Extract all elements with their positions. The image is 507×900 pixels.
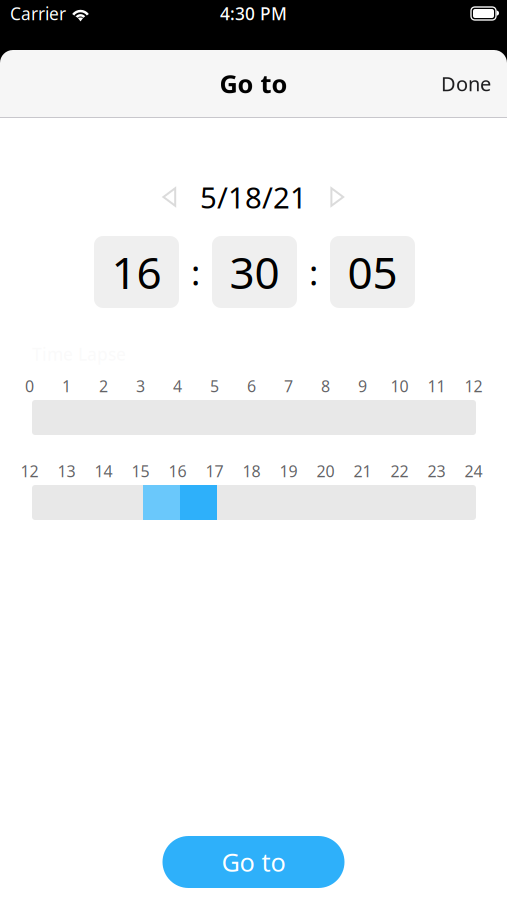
staticText: Go to <box>219 67 287 100</box>
staticText: 05 <box>347 243 397 301</box>
staticText: 21 <box>353 460 371 482</box>
staticText: 18 <box>242 460 260 482</box>
staticText: 5 <box>210 375 219 397</box>
button[interactable]: Done <box>425 56 507 111</box>
button[interactable]: Hours 12 to 24 <box>32 485 476 520</box>
button[interactable]: Next day <box>330 187 345 207</box>
staticText: Done <box>441 70 491 97</box>
staticText: 13 <box>57 460 75 482</box>
staticText: 20 <box>316 460 334 482</box>
staticText: 5/18/21 <box>200 177 307 216</box>
staticText: 24 <box>464 460 482 482</box>
staticText: : <box>191 249 200 295</box>
staticText: 8 <box>321 375 330 397</box>
staticText: 17 <box>205 460 223 482</box>
staticText: 11 <box>427 375 445 397</box>
staticText: : <box>309 249 318 295</box>
staticText: 2 <box>99 375 108 397</box>
staticText: 4:30 PM <box>220 2 287 25</box>
staticText: 14 <box>94 460 112 482</box>
staticText: 19 <box>279 460 297 482</box>
staticText: 4 <box>173 375 182 397</box>
button[interactable]: Go to <box>162 836 344 888</box>
staticText: 15 <box>131 460 149 482</box>
button[interactable]: 30 <box>212 236 297 308</box>
button[interactable]: 16 <box>94 236 179 308</box>
staticText: 7 <box>284 375 293 397</box>
staticText: 30 <box>229 243 279 301</box>
staticText: 22 <box>390 460 408 482</box>
staticText: 9 <box>358 375 367 397</box>
staticText: 0 <box>25 375 34 397</box>
staticText: 6 <box>247 375 256 397</box>
staticText: 16 <box>168 460 186 482</box>
staticText: Go to <box>221 845 285 879</box>
staticText: 12 <box>20 460 38 482</box>
staticText: 23 <box>427 460 445 482</box>
staticText: Carrier <box>10 2 66 25</box>
button[interactable]: Previous day <box>162 187 177 207</box>
staticText: 10 <box>390 375 408 397</box>
staticText: 16 <box>111 243 161 301</box>
staticText: 12 <box>464 375 482 397</box>
button[interactable]: 05 <box>330 236 415 308</box>
staticText: 1 <box>62 375 71 397</box>
staticText: 3 <box>136 375 145 397</box>
